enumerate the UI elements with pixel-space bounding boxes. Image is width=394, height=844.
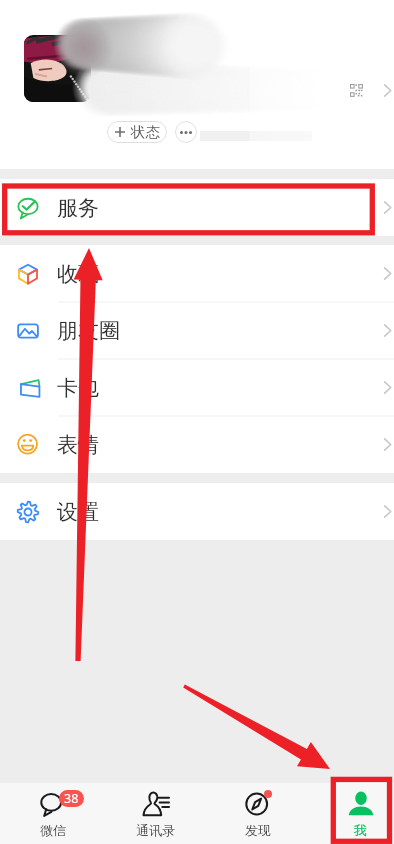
button[interactable]: My QR code [344, 78, 368, 102]
button[interactable]: 我 [309, 783, 394, 844]
staticText: 卡包 [57, 375, 99, 401]
button[interactable]: 38 [1, 783, 104, 844]
button[interactable]: My QR code [0, 0, 394, 169]
button[interactable]: 发现 [206, 783, 309, 844]
staticText: 服务 [57, 195, 99, 221]
button[interactable]: 卡包 [0, 359, 394, 416]
staticText: 通讯录 [136, 822, 175, 838]
staticText: 状态 [131, 123, 160, 141]
staticText: 38 [64, 790, 79, 807]
staticText: 收藏 [57, 261, 99, 287]
staticText: 设置 [57, 499, 99, 525]
button[interactable]: More options [175, 121, 197, 143]
staticText: 发现 [245, 822, 271, 838]
button[interactable]: 设置 [0, 483, 394, 540]
staticText: 微信 [40, 822, 66, 838]
staticText: 我 [354, 822, 367, 838]
staticText: 表情 [57, 432, 99, 458]
button[interactable]: 通讯录 [104, 783, 207, 844]
button[interactable]: 朋友圈 [0, 302, 394, 359]
button[interactable]: 状态 [107, 121, 167, 143]
button[interactable]: 收藏 [0, 245, 394, 302]
button[interactable]: 服务 [0, 179, 394, 236]
staticText: 朋友圈 [57, 318, 120, 344]
button[interactable]: 表情 [0, 416, 394, 473]
